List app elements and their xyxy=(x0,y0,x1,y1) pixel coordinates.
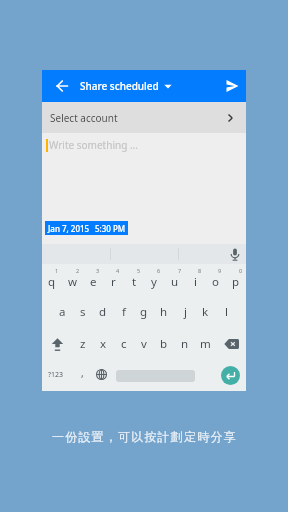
staticText: f xyxy=(122,304,126,320)
staticText: 1 xyxy=(55,267,59,274)
staticText: u xyxy=(171,274,179,290)
staticText: 一份設置，可以按計劃定時分享 xyxy=(52,429,237,444)
button[interactable] xyxy=(90,364,113,385)
staticText: 0 xyxy=(239,267,243,274)
button[interactable] xyxy=(223,244,246,264)
staticText: ?123 xyxy=(48,370,64,380)
staticText: p xyxy=(232,274,240,290)
staticText: . xyxy=(222,366,225,380)
staticText: 5:30 PM xyxy=(95,223,126,234)
staticText: t xyxy=(132,274,137,290)
staticText: o xyxy=(212,274,219,290)
staticText: , xyxy=(81,366,84,380)
staticText: 2 xyxy=(76,267,80,274)
staticText: r xyxy=(111,274,116,290)
staticText: Share scheduled xyxy=(80,79,159,93)
staticText: 5 xyxy=(137,267,141,274)
staticText: m xyxy=(200,336,211,352)
staticText: s xyxy=(80,304,86,320)
staticText: 4 xyxy=(116,267,120,274)
staticText: h xyxy=(160,304,168,320)
staticText: Select account xyxy=(50,111,118,125)
staticText: c xyxy=(121,336,127,352)
staticText: x xyxy=(100,336,107,352)
button[interactable]: Jan 7, 2015 xyxy=(45,221,128,235)
staticText: e xyxy=(90,274,97,290)
button[interactable] xyxy=(50,74,74,98)
button[interactable] xyxy=(220,74,244,98)
button[interactable] xyxy=(221,366,240,385)
staticText: y xyxy=(151,274,157,290)
staticText: v xyxy=(141,336,147,352)
staticText: 9 xyxy=(218,267,222,274)
button[interactable]: Select account xyxy=(42,102,246,133)
staticText: k xyxy=(202,304,209,320)
staticText: a xyxy=(59,304,66,320)
staticText: z xyxy=(80,336,86,352)
staticText: q xyxy=(48,274,56,290)
staticText: Write something ... xyxy=(49,138,138,152)
staticText: g xyxy=(140,304,148,320)
button[interactable] xyxy=(219,334,243,354)
staticText: i xyxy=(194,274,197,290)
staticText: Jan 7, 2015 xyxy=(48,223,90,234)
staticText: 7 xyxy=(178,267,182,274)
staticText: 3 xyxy=(96,267,100,274)
button[interactable] xyxy=(45,334,69,354)
staticText: w xyxy=(68,274,78,290)
staticText: l xyxy=(225,304,228,320)
staticText: b xyxy=(160,336,168,352)
button[interactable]: Share scheduled xyxy=(80,70,220,102)
staticText: j xyxy=(184,304,187,320)
staticText: d xyxy=(99,304,107,320)
staticText: n xyxy=(181,336,189,352)
button[interactable]: Write something ... xyxy=(42,133,246,244)
staticText: 6 xyxy=(157,267,161,274)
staticText: 8 xyxy=(198,267,202,274)
